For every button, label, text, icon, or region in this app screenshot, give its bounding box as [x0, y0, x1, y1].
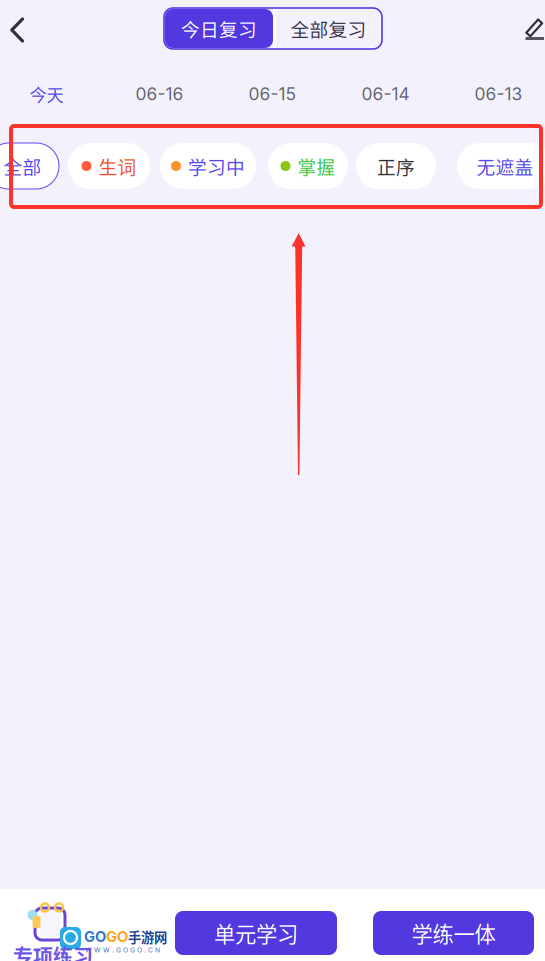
button[interactable]: 掌握 — [268, 143, 348, 189]
button[interactable]: 学习中 — [160, 143, 256, 189]
button[interactable]: 今天 — [0, 79, 103, 109]
staticText: W W W . G O G O . C N — [85, 946, 160, 954]
button[interactable]: 全部复习 — [276, 9, 381, 48]
staticText: 生词 — [98, 152, 136, 179]
button[interactable]: 今日复习 — [165, 9, 273, 48]
button[interactable]: Edit — [524, 16, 545, 41]
staticText: 学练一体 — [411, 918, 495, 948]
staticText: 06-14 — [361, 83, 409, 104]
button[interactable]: Back — [2, 16, 32, 44]
staticText: 学习中 — [188, 152, 245, 179]
button[interactable]: 正序 — [356, 143, 436, 189]
staticText: 06-16 — [135, 83, 183, 104]
button[interactable]: 06-15 — [216, 79, 329, 109]
staticText: GO — [106, 928, 128, 945]
staticText: 掌握 — [297, 152, 335, 179]
button[interactable]: 06-14 — [329, 79, 442, 109]
staticText: 06-15 — [248, 83, 296, 104]
staticText: GO — [84, 928, 106, 945]
staticText: 06-13 — [474, 83, 522, 104]
staticText: 专项练习 — [13, 941, 93, 961]
staticText: 全部复习 — [290, 15, 366, 42]
button[interactable]: 06-13 — [442, 79, 545, 109]
button[interactable]: 单元学习 — [175, 911, 337, 955]
staticText: 单元学习 — [214, 918, 298, 948]
button[interactable]: 生词 — [68, 143, 150, 189]
staticText: 全部 — [3, 152, 41, 179]
button[interactable]: 学练一体 — [373, 911, 534, 955]
staticText: 今天 — [29, 81, 63, 107]
button[interactable]: 无遮盖 — [457, 143, 545, 189]
button[interactable]: 全部 — [0, 143, 59, 189]
staticText: 手游网 — [128, 927, 167, 946]
button[interactable]: 06-16 — [103, 79, 216, 109]
staticText: 无遮盖 — [476, 152, 533, 179]
staticText: 正序 — [377, 152, 415, 179]
staticText: 今日复习 — [181, 15, 257, 42]
